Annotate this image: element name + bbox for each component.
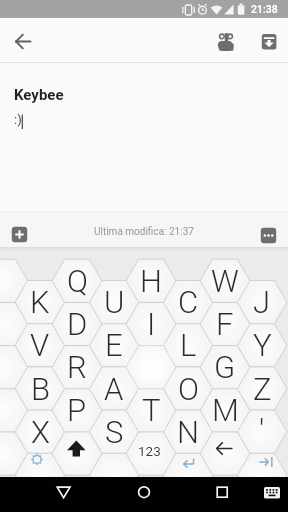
button[interactable]: C	[163, 280, 213, 324]
button[interactable]: M	[200, 388, 250, 432]
staticText: D	[67, 306, 88, 342]
staticText: K	[30, 284, 50, 320]
staticText: E	[105, 327, 123, 363]
staticText: C	[178, 284, 199, 320]
staticText: L	[180, 327, 197, 363]
button[interactable]: V	[15, 323, 65, 367]
button[interactable]: X	[15, 410, 65, 454]
staticText: :)	[14, 112, 22, 127]
button[interactable]: Y	[237, 323, 287, 367]
button[interactable]	[52, 432, 102, 476]
button[interactable]: 123	[126, 432, 176, 476]
button[interactable]: U	[89, 280, 139, 324]
staticText: U	[104, 284, 125, 320]
button[interactable]: R	[52, 345, 102, 389]
button[interactable]	[44, 477, 84, 512]
button[interactable]	[210, 26, 240, 56]
button[interactable]	[9, 224, 30, 245]
staticText: Ultima modifica: 21:37	[94, 226, 194, 238]
button[interactable]: K	[15, 280, 65, 324]
staticText: O	[178, 371, 199, 407]
staticText: G	[214, 349, 236, 385]
button[interactable]: B	[15, 367, 65, 411]
button[interactable]: S	[89, 410, 139, 454]
button[interactable]: P	[52, 388, 102, 432]
button[interactable]: L	[163, 323, 213, 367]
button[interactable]: O	[163, 367, 213, 411]
staticText: P	[67, 392, 87, 428]
button[interactable]	[126, 345, 176, 389]
button[interactable]	[200, 432, 250, 476]
staticText: F	[216, 306, 234, 342]
staticText: Z	[253, 371, 272, 407]
staticText: '	[259, 412, 265, 448]
button[interactable]: G	[200, 345, 250, 389]
button[interactable]	[252, 26, 282, 56]
staticText: A	[104, 371, 124, 407]
staticText: M	[212, 392, 239, 428]
staticText: Q	[67, 263, 88, 299]
button[interactable]	[8, 26, 38, 56]
staticText: N	[177, 414, 200, 450]
button[interactable]: J	[237, 280, 287, 324]
staticText: T	[142, 392, 161, 428]
button[interactable]: Z	[237, 367, 287, 411]
button[interactable]	[254, 479, 288, 508]
button[interactable]: N	[163, 410, 213, 454]
button[interactable]: A	[89, 367, 139, 411]
staticText: 21:38	[251, 3, 278, 15]
staticText: Keybee	[14, 86, 64, 104]
staticText: S	[105, 414, 124, 450]
button[interactable]	[258, 225, 279, 246]
staticText: W	[211, 263, 239, 299]
button[interactable]: H	[126, 259, 176, 303]
staticText: X	[31, 414, 50, 450]
button[interactable]: I	[126, 302, 176, 346]
button[interactable]: T	[126, 388, 176, 432]
button[interactable]: W	[200, 259, 250, 303]
staticText: I	[147, 306, 156, 342]
button[interactable]: '	[237, 408, 287, 452]
button[interactable]: Q	[52, 259, 102, 303]
button[interactable]	[124, 477, 164, 512]
button[interactable]: E	[89, 323, 139, 367]
staticText: V	[30, 327, 50, 363]
button[interactable]: F	[200, 302, 250, 346]
staticText: 123	[138, 443, 161, 459]
staticText: H	[140, 263, 162, 299]
staticText: R	[67, 349, 87, 385]
staticText: J	[253, 284, 271, 320]
staticText: Y	[253, 327, 272, 363]
button[interactable]	[202, 477, 242, 512]
staticText: B	[31, 371, 50, 407]
button[interactable]: D	[52, 302, 102, 346]
